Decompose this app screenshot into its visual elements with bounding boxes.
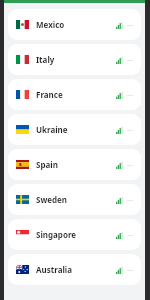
staticText: Italy (36, 54, 55, 65)
staticText: — (126, 161, 133, 169)
other: Signal strength (116, 231, 133, 239)
other: Signal strength (116, 56, 133, 64)
staticText: Ukraine (36, 124, 68, 135)
button[interactable]: Singapore (8, 219, 141, 250)
button[interactable]: Italy (8, 44, 141, 75)
staticText: — (126, 196, 133, 204)
other: Signal strength (116, 161, 133, 169)
other: Signal strength (116, 21, 133, 29)
other: Signal strength (116, 91, 133, 99)
staticText: — (126, 126, 133, 134)
button[interactable]: Spain (8, 149, 141, 180)
staticText: Mexico (36, 19, 65, 30)
staticText: — (126, 91, 133, 99)
other: Signal strength (116, 126, 133, 134)
other: Signal strength (116, 196, 133, 204)
staticText: — (126, 266, 133, 274)
button[interactable]: Mexico (8, 9, 141, 40)
staticText: Spain (36, 159, 58, 170)
staticText: Singapore (36, 229, 77, 240)
staticText: Sweden (36, 194, 68, 205)
staticText: — (126, 21, 133, 29)
staticText: — (126, 56, 133, 64)
other: Signal strength (116, 266, 133, 274)
button[interactable]: France (8, 79, 141, 110)
button[interactable]: Ukraine (8, 114, 141, 145)
staticText: Australia (36, 264, 72, 275)
staticText: — (126, 231, 133, 239)
staticText: France (36, 89, 63, 100)
button[interactable]: Sweden (8, 184, 141, 215)
button[interactable]: Australia (8, 254, 141, 285)
